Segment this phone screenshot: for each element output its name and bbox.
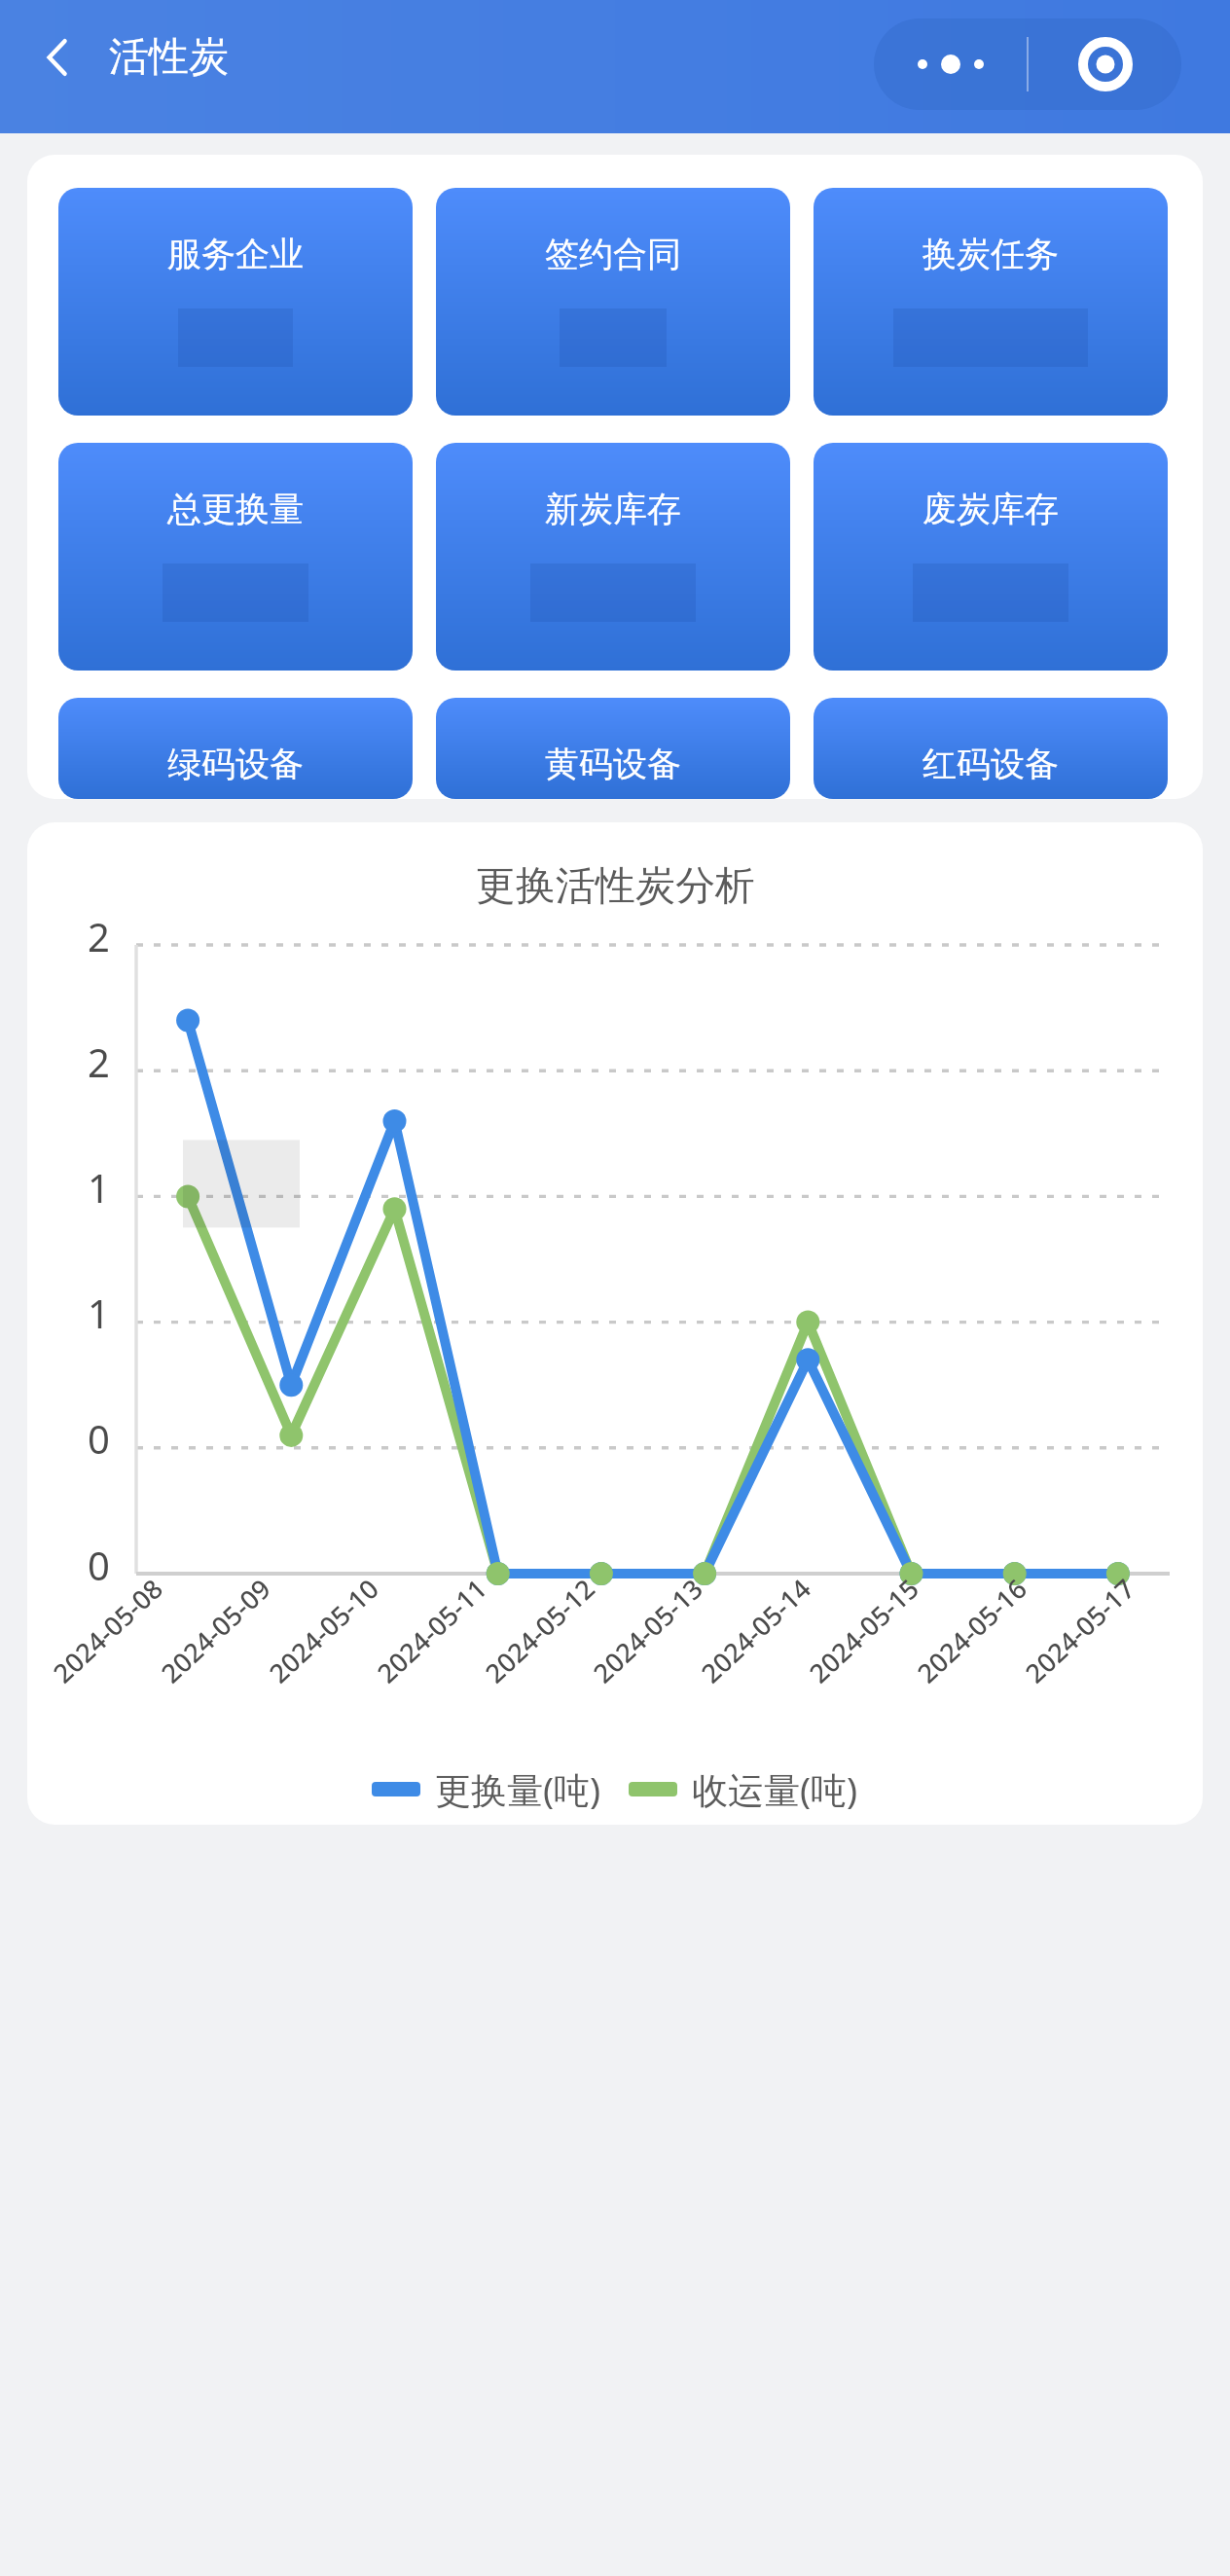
staticText: 2024-05-14 xyxy=(693,1571,818,1691)
staticText: 1 xyxy=(88,1161,110,1214)
staticText: 2024-05-11 xyxy=(369,1571,494,1691)
staticText: 红码设备 xyxy=(922,743,1059,785)
button[interactable]: 新炭库存 xyxy=(436,443,790,671)
button[interactable]: 服务企业 xyxy=(58,188,413,416)
button[interactable]: Back xyxy=(25,25,90,90)
staticText: 2024-05-13 xyxy=(585,1571,710,1691)
staticText: 更换量(吨) xyxy=(435,1764,601,1814)
staticText: 签约合同 xyxy=(545,233,681,275)
staticText: 黄码设备 xyxy=(545,743,681,785)
staticText: 0 xyxy=(88,1539,110,1591)
staticText: 2024-05-17 xyxy=(1017,1571,1142,1691)
button[interactable]: 总更换量 xyxy=(58,443,413,671)
button[interactable]: 换炭任务 xyxy=(814,188,1168,416)
button[interactable]: 红码设备 xyxy=(814,698,1168,799)
staticText: 2024-05-15 xyxy=(801,1571,926,1691)
staticText: 2024-05-09 xyxy=(153,1571,278,1691)
staticText: 0 xyxy=(88,1412,110,1465)
staticText: 1 xyxy=(88,1287,110,1339)
staticText: 换炭任务 xyxy=(922,233,1059,275)
staticText: 2 xyxy=(88,1035,110,1088)
button[interactable]: 签约合同 xyxy=(436,188,790,416)
staticText: 2024-05-12 xyxy=(477,1571,602,1691)
button[interactable]: 绿码设备 xyxy=(58,698,413,799)
staticText: 服务企业 xyxy=(167,233,304,275)
staticText: 2024-05-16 xyxy=(909,1571,1034,1691)
staticText: 绿码设备 xyxy=(167,743,304,785)
button[interactable]: 黄码设备 xyxy=(436,698,790,799)
staticText: 2024-05-10 xyxy=(261,1571,386,1691)
staticText: 总更换量 xyxy=(167,488,304,530)
staticText: 新炭库存 xyxy=(545,488,681,530)
staticText: 2 xyxy=(88,910,110,962)
staticText: 活性炭 xyxy=(109,32,229,83)
button[interactable]: 废炭库存 xyxy=(814,443,1168,671)
staticText: 更换活性炭分析 xyxy=(476,861,755,912)
staticText: 收运量(吨) xyxy=(692,1764,858,1814)
staticText: 2024-05-08 xyxy=(45,1571,170,1691)
button[interactable]: Mini program menu xyxy=(874,18,1181,110)
staticText: 废炭库存 xyxy=(922,488,1059,530)
